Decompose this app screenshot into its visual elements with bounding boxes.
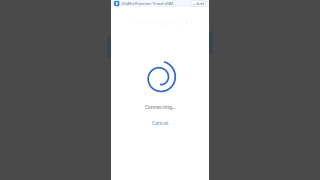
staticText: Connecting...	[145, 103, 175, 110]
staticText: Cancel	[152, 119, 168, 127]
staticText: GloMo Premium Travel eSIM	[121, 1, 173, 6]
button[interactable]: Cancel	[152, 119, 168, 127]
button[interactable]: + Add	[191, 0, 206, 7]
staticText: + Add	[193, 1, 203, 6]
